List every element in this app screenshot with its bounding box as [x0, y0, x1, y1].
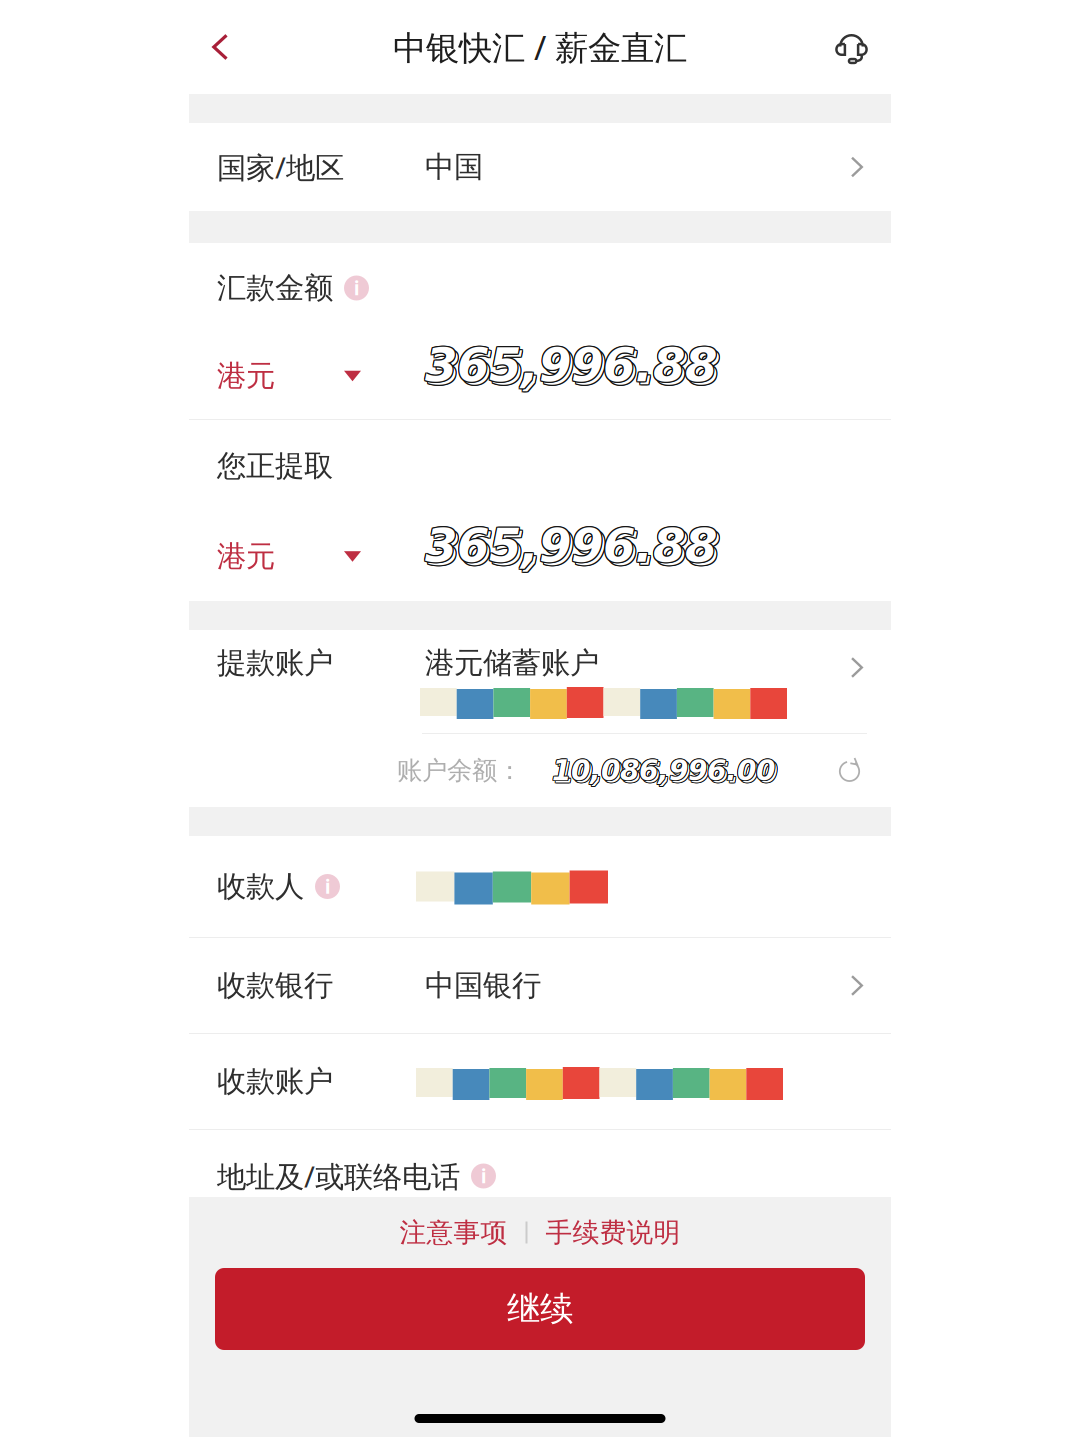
staticText: 10,086,996.00 — [551, 754, 774, 787]
button[interactable]: 继续 — [215, 1268, 865, 1350]
staticText: 地址及/或联络电话 — [217, 1156, 460, 1195]
staticText: 10,086,996.00 — [555, 756, 778, 789]
button[interactable]: Back — [196, 17, 244, 76]
staticText: 365,996.88 — [428, 521, 720, 576]
staticText: 10,086,996.00 — [553, 756, 776, 788]
staticText: 365,996.88 — [427, 522, 719, 577]
staticText: 365,996.88 — [426, 337, 718, 391]
staticText: 汇款金额 — [217, 270, 333, 306]
staticText: 365,996.88 — [424, 517, 716, 572]
staticText: 收款银行 — [217, 967, 333, 1003]
button[interactable]: 提款账户 — [189, 630, 891, 733]
staticText: 365,996.88 — [424, 519, 716, 574]
staticText: 港元 — [217, 538, 275, 574]
staticText: 365,996.88 — [429, 520, 721, 575]
staticText: 365,996.88 — [427, 340, 719, 394]
staticText: 中国 — [425, 149, 483, 185]
staticText: 365,996.88 — [428, 341, 720, 395]
staticText: 港元 — [217, 358, 275, 394]
staticText: 365,996.88 — [429, 342, 721, 396]
staticText: 365,996.88 — [426, 338, 718, 392]
staticText: 365,996.88 — [427, 342, 719, 396]
staticText: 365,996.88 — [429, 521, 721, 576]
staticText: 365,996.88 — [428, 340, 720, 394]
staticText: 提款账户 — [217, 645, 333, 681]
button[interactable]: Customer service — [824, 19, 879, 74]
button[interactable]: 注意事项 — [399, 1216, 507, 1249]
staticText: 365,996.88 — [424, 518, 716, 573]
staticText: 365,996.88 — [428, 342, 720, 396]
staticText: 手续费说明 — [545, 1216, 680, 1249]
staticText: 365,996.88 — [426, 518, 718, 573]
staticText: 10,086,996.00 — [553, 754, 776, 787]
staticText: 365,996.88 — [425, 518, 717, 573]
staticText: 账户余额： — [397, 755, 522, 786]
button[interactable]: Refresh balance — [836, 757, 863, 784]
staticText: 10,086,996.00 — [553, 756, 776, 789]
staticText: 365,996.88 — [429, 340, 721, 394]
staticText: 365,996.88 — [425, 337, 717, 391]
staticText: 10,086,996.00 — [553, 757, 776, 790]
staticText: 10,086,996.00 — [554, 756, 777, 789]
staticText: 365,996.88 — [425, 519, 717, 574]
staticText: 365,996.88 — [426, 519, 718, 574]
staticText: i — [325, 874, 330, 899]
staticText: 您正提取 — [217, 448, 333, 484]
button[interactable]: 手续费说明 — [545, 1216, 680, 1249]
button[interactable]: 国家/地区 — [189, 123, 891, 211]
staticText: 收款人 — [217, 868, 304, 904]
staticText: 365,996.88 — [424, 338, 716, 392]
staticText: 365,996.88 — [425, 339, 717, 393]
staticText: 继续 — [507, 1288, 573, 1329]
staticText: 港元储蓄账户 — [425, 645, 599, 681]
staticText: 10,086,996.00 — [553, 755, 776, 788]
staticText: 中国银行 — [425, 967, 541, 1003]
staticText: 10,086,996.00 — [553, 753, 776, 786]
button[interactable]: 收款银行 — [189, 938, 891, 1033]
staticText: 10,086,996.00 — [554, 757, 777, 790]
staticText: 10,086,996.00 — [555, 756, 778, 788]
staticText: 365,996.88 — [428, 522, 720, 577]
staticText: 10,086,996.00 — [552, 755, 775, 788]
staticText: 注意事项 — [399, 1216, 507, 1249]
staticText: 收款账户 — [217, 1063, 333, 1099]
staticText: 365,996.88 — [425, 338, 717, 392]
staticText: 365,996.88 — [429, 522, 721, 577]
staticText: 365,996.88 — [427, 341, 719, 395]
staticText: 365,996.88 — [426, 517, 718, 572]
staticText: 10,086,996.00 — [554, 756, 777, 788]
button[interactable]: 港元 — [217, 538, 377, 574]
staticText: 10,086,996.00 — [552, 753, 775, 786]
staticText: 365,996.88 — [429, 341, 721, 395]
staticText: 10,086,996.00 — [551, 755, 774, 788]
staticText: 365,996.88 — [425, 517, 717, 572]
staticText: 10,086,996.00 — [552, 754, 775, 787]
staticText: 365,996.88 — [427, 521, 719, 576]
button[interactable]: 港元 — [217, 358, 377, 394]
staticText: 365,996.88 — [424, 337, 716, 391]
staticText: i — [354, 276, 359, 300]
staticText: 国家/地区 — [217, 147, 344, 186]
staticText: 中银快汇 / 薪金直汇 — [393, 25, 687, 69]
staticText: 365,996.88 — [426, 339, 718, 393]
staticText: 10,086,996.00 — [555, 757, 778, 790]
staticText: 365,996.88 — [428, 520, 720, 575]
staticText: 365,996.88 — [427, 520, 719, 575]
staticText: i — [481, 1164, 486, 1188]
staticText: 10,086,996.00 — [551, 753, 774, 786]
staticText: 365,996.88 — [424, 339, 716, 393]
